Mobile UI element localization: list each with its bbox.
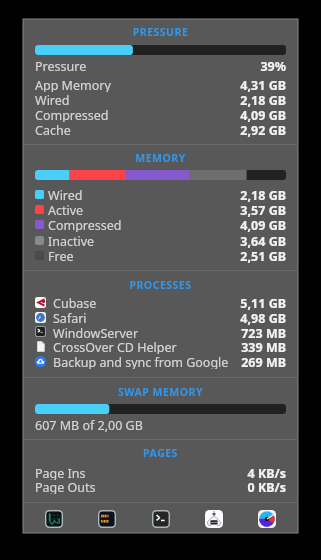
staticText: 2,51 GB xyxy=(86,248,286,263)
staticText: 3,64 GB xyxy=(86,233,286,248)
staticText: 4,09 GB xyxy=(86,217,286,232)
staticText: Pressure xyxy=(35,58,285,73)
staticText: 339 MB xyxy=(86,339,286,354)
button[interactable]: WindowServer xyxy=(23,325,298,340)
staticText: 2,18 GB xyxy=(86,187,286,202)
button[interactable]: Wired xyxy=(23,92,298,107)
staticText: 4,98 GB xyxy=(86,310,286,325)
staticText: 39% xyxy=(86,58,286,73)
button[interactable]: Page Ins xyxy=(23,465,298,480)
staticText: 0 KB/s xyxy=(86,479,286,494)
button[interactable]: Inactive xyxy=(23,233,298,248)
staticText: CrossOver CD Helper xyxy=(53,339,303,354)
staticText: 4,31 GB xyxy=(86,77,286,92)
staticText: 3,57 GB xyxy=(86,202,286,217)
button[interactable]: Active xyxy=(23,202,298,217)
button[interactable]: System Monitor xyxy=(239,503,294,534)
staticText: Wired xyxy=(48,187,298,202)
button[interactable]: Compressed xyxy=(23,217,298,232)
button[interactable]: Pressure xyxy=(23,58,298,73)
staticText: Cubase xyxy=(53,295,303,310)
staticText: 5,11 GB xyxy=(86,295,286,310)
button[interactable]: Compressed xyxy=(23,107,298,122)
staticText: MEMORY xyxy=(23,151,298,164)
staticText: Wired xyxy=(35,92,285,107)
button[interactable]: Activity Monitor xyxy=(26,503,81,534)
staticText: Compressed xyxy=(35,107,285,122)
staticText: SWAP MEMORY xyxy=(23,385,298,398)
staticText: Compressed xyxy=(48,217,298,232)
button[interactable]: Free xyxy=(23,248,298,263)
button[interactable]: Disk Utility xyxy=(186,503,241,534)
staticText: App Memory xyxy=(35,77,285,92)
button[interactable]: Cubase xyxy=(23,295,298,310)
staticText: PRESSURE xyxy=(23,25,298,38)
staticText: 269 MB xyxy=(86,354,286,369)
button[interactable]: Console xyxy=(79,503,134,534)
staticText: Safari xyxy=(53,310,303,325)
button[interactable]: Safari xyxy=(23,310,298,325)
staticText: 2,18 GB xyxy=(86,92,286,107)
staticText: PAGES xyxy=(23,446,298,459)
staticText: 723 MB xyxy=(86,325,286,340)
button[interactable]: Backup and sync from Google xyxy=(23,354,298,369)
staticText: WindowServer xyxy=(53,325,303,340)
button[interactable]: CrossOver CD Helper xyxy=(23,339,298,354)
button[interactable]: Terminal xyxy=(133,503,188,534)
staticText: PROCESSES xyxy=(23,278,298,291)
staticText: 4,09 GB xyxy=(86,107,286,122)
staticText: Backup and sync from Google xyxy=(53,354,303,369)
staticText: 2,92 GB xyxy=(86,122,286,137)
button[interactable]: Cache xyxy=(23,122,298,137)
staticText: Inactive xyxy=(48,233,298,248)
staticText: Active xyxy=(48,202,298,217)
staticText: Cache xyxy=(35,122,285,137)
staticText: Page Outs xyxy=(35,479,285,494)
button[interactable]: Wired xyxy=(23,187,298,202)
staticText: Free xyxy=(48,248,298,263)
staticText: 607 MB of 2,00 GB xyxy=(35,417,285,432)
button[interactable]: App Memory xyxy=(23,77,298,92)
button[interactable]: Page Outs xyxy=(23,479,298,494)
staticText: Page Ins xyxy=(35,465,285,480)
staticText: 4 KB/s xyxy=(86,465,286,480)
